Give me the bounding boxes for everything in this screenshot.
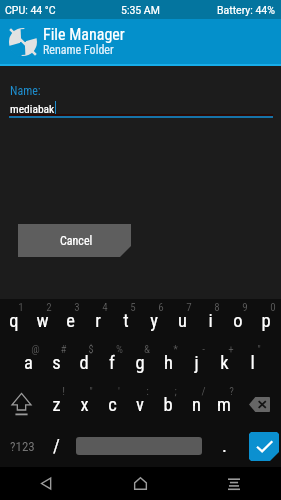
staticText: Rename Folder bbox=[43, 43, 114, 57]
button[interactable]: ? bbox=[210, 383, 238, 425]
button[interactable]: $ bbox=[70, 341, 98, 383]
staticText: j bbox=[194, 352, 199, 374]
staticText: * bbox=[173, 343, 178, 356]
button[interactable]: 0 bbox=[252, 299, 280, 341]
button[interactable]: + bbox=[210, 341, 238, 383]
button[interactable]: " bbox=[238, 341, 266, 383]
staticText: r bbox=[95, 310, 101, 332]
button[interactable]: ! bbox=[42, 383, 70, 425]
button[interactable]: 7 bbox=[168, 299, 196, 341]
button[interactable]: : bbox=[126, 383, 154, 425]
button[interactable]: Back bbox=[0, 467, 93, 500]
staticText: : bbox=[146, 385, 149, 398]
staticText: CPU: 44 °C bbox=[5, 4, 56, 16]
staticText: # bbox=[60, 343, 67, 356]
staticText: i bbox=[208, 310, 213, 332]
staticText: Cancel bbox=[60, 234, 93, 248]
staticText: ? bbox=[229, 385, 234, 398]
staticText: ' bbox=[118, 385, 120, 398]
staticText: p bbox=[261, 310, 271, 332]
button[interactable]: & bbox=[126, 341, 154, 383]
button[interactable]: ' bbox=[98, 383, 126, 425]
staticText: g bbox=[135, 352, 145, 374]
staticText: 0 bbox=[270, 301, 276, 314]
staticText: 8 bbox=[214, 301, 220, 314]
staticText: @ bbox=[31, 343, 40, 356]
button[interactable]: ; bbox=[154, 383, 182, 425]
button[interactable]: 5 bbox=[112, 299, 140, 341]
staticText: ?123 bbox=[10, 439, 35, 454]
staticText: a bbox=[24, 352, 33, 374]
staticText: w bbox=[36, 310, 49, 332]
staticText: d bbox=[79, 352, 89, 374]
button[interactable]: @ bbox=[14, 341, 42, 383]
staticText: ; bbox=[174, 385, 177, 398]
staticText: $ bbox=[88, 343, 94, 356]
button[interactable]: Home bbox=[93, 467, 187, 500]
staticText: q bbox=[9, 310, 19, 332]
button[interactable]: Enter bbox=[249, 432, 279, 461]
button[interactable]: . bbox=[202, 425, 247, 467]
button[interactable]: Shift bbox=[0, 383, 42, 425]
staticText: / bbox=[53, 435, 60, 457]
button[interactable]: 2 bbox=[28, 299, 56, 341]
staticText: f bbox=[109, 352, 115, 374]
button[interactable]: 8 bbox=[196, 299, 224, 341]
staticText: Battery: 44% bbox=[217, 4, 275, 16]
button[interactable]: Cancel bbox=[18, 224, 131, 257]
staticText: & bbox=[144, 343, 150, 356]
staticText: h bbox=[164, 352, 173, 374]
staticText: k bbox=[220, 352, 229, 374]
staticText: c bbox=[108, 394, 117, 416]
button[interactable]: Backspace bbox=[238, 383, 280, 425]
button[interactable]: / bbox=[182, 383, 210, 425]
staticText: 1 bbox=[18, 301, 24, 314]
button[interactable]: " bbox=[70, 383, 98, 425]
staticText: " bbox=[89, 385, 93, 398]
button[interactable]: 3 bbox=[56, 299, 84, 341]
button[interactable]: 9 bbox=[224, 299, 252, 341]
button[interactable]: - bbox=[182, 341, 210, 383]
staticText: mediabak bbox=[10, 102, 55, 115]
staticText: " bbox=[257, 343, 261, 356]
staticText: Name: bbox=[10, 84, 41, 98]
staticText: o bbox=[233, 310, 243, 332]
staticText: z bbox=[52, 394, 61, 416]
button[interactable]: * bbox=[154, 341, 182, 383]
staticText: 9 bbox=[242, 301, 248, 314]
staticText: 5:35 AM bbox=[121, 4, 160, 16]
button[interactable]: 6 bbox=[140, 299, 168, 341]
staticText: 4 bbox=[102, 301, 108, 314]
staticText: s bbox=[52, 352, 61, 374]
staticText: 5 bbox=[130, 301, 136, 314]
staticText: u bbox=[178, 310, 187, 332]
staticText: y bbox=[150, 310, 158, 332]
staticText: n bbox=[192, 394, 201, 416]
staticText: + bbox=[228, 343, 234, 356]
button[interactable]: ?123 bbox=[0, 425, 42, 467]
staticText: x bbox=[80, 394, 89, 416]
staticText: 6 bbox=[158, 301, 164, 314]
staticText: 2 bbox=[46, 301, 52, 314]
staticText: ! bbox=[62, 385, 65, 398]
staticText: 3 bbox=[74, 301, 80, 314]
staticText: l bbox=[250, 352, 255, 374]
button[interactable]: # bbox=[42, 341, 70, 383]
button[interactable]: % bbox=[98, 341, 126, 383]
staticText: v bbox=[136, 394, 144, 416]
button[interactable]: Recents bbox=[187, 467, 281, 500]
button[interactable]: 1 bbox=[0, 299, 28, 341]
staticText: % bbox=[116, 343, 123, 356]
staticText: 7 bbox=[186, 301, 192, 314]
staticText: File Manager bbox=[43, 25, 125, 44]
staticText: e bbox=[66, 310, 75, 332]
button[interactable]: Space bbox=[76, 437, 202, 455]
button[interactable]: File Manager bbox=[0, 19, 281, 66]
staticText: t bbox=[123, 310, 129, 332]
button[interactable]: / bbox=[42, 425, 70, 467]
staticText: m bbox=[217, 394, 231, 416]
staticText: / bbox=[201, 385, 206, 398]
button[interactable]: 4 bbox=[84, 299, 112, 341]
staticText: b bbox=[163, 394, 173, 416]
staticText: . bbox=[222, 435, 227, 457]
